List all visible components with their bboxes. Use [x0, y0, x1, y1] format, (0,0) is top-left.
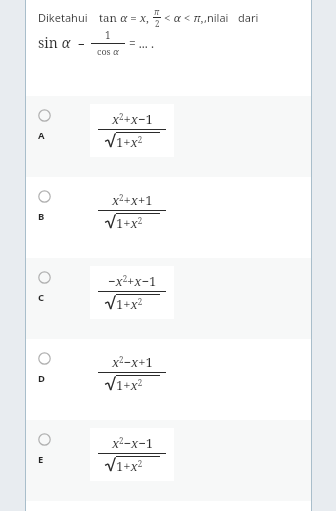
staticText: – — [78, 34, 85, 52]
staticText: = ... . — [129, 35, 154, 51]
button[interactable]: Select option B — [26, 177, 311, 258]
button[interactable]: Select option A — [26, 96, 311, 177]
staticText: x2+x−1 — [112, 110, 153, 128]
other: Select option B — [38, 190, 51, 203]
staticText: 2 — [155, 18, 160, 29]
staticText: E — [38, 453, 44, 466]
staticText: D — [38, 372, 45, 385]
staticText: x2+x+1 — [112, 191, 153, 209]
staticText: < α < π, — [164, 10, 204, 26]
staticText: −x2+x−1 — [108, 272, 157, 290]
other: Select option E — [38, 433, 51, 446]
other: Select option A — [38, 109, 51, 122]
staticText: 1+x2 — [116, 214, 143, 232]
staticText: tan α = x, — [99, 10, 152, 26]
button[interactable]: Select option C — [26, 258, 311, 339]
staticText: ,nilai — [204, 10, 229, 25]
staticText: sin α — [38, 33, 71, 52]
staticText: B — [38, 210, 45, 223]
button[interactable]: Select option D — [26, 339, 311, 420]
staticText: Diketahui — [38, 10, 88, 25]
staticText: x2−x−1 — [112, 434, 153, 452]
staticText: dari — [238, 10, 259, 25]
staticText: 1+x2 — [116, 295, 143, 313]
staticText: cos α — [97, 45, 119, 57]
staticText: C — [38, 291, 45, 304]
staticText: 1 — [105, 28, 111, 42]
staticText: 1+x2 — [116, 133, 143, 151]
staticText: x2−x+1 — [112, 353, 153, 371]
staticText: 1+x2 — [116, 457, 143, 475]
staticText: 1+x2 — [116, 376, 143, 394]
staticText: π — [154, 6, 160, 17]
staticText: A — [38, 129, 45, 142]
other: Select option C — [38, 271, 51, 284]
button[interactable]: Select option E — [26, 420, 311, 501]
other: Select option D — [38, 352, 51, 365]
